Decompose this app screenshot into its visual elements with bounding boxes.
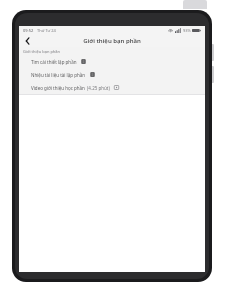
button[interactable]: Quay lại: [19, 34, 35, 47]
staticText: Thứ Tư 24: [37, 28, 56, 33]
button[interactable]: Phát video: [114, 85, 119, 90]
staticText: 09:52: [23, 28, 34, 33]
staticText: Nhiệu tài liệu tài lập phần: [31, 72, 86, 78]
staticText: Tìm cài thiết lập phần: [31, 59, 77, 65]
staticText: Giới thiệu bạn phần: [23, 49, 61, 54]
button[interactable]: Tìm cài thiết lập phần: [19, 55, 205, 68]
staticText: Giới thiệu bạn phần: [83, 37, 141, 45]
button[interactable]: Tài liệu: [81, 59, 86, 64]
staticText: (4.25 phút): [87, 85, 110, 91]
button[interactable]: Tài liệu: [90, 72, 95, 77]
button[interactable]: Video giới thiệu học phần: [19, 81, 205, 94]
button[interactable]: Nhiệu tài liệu tài lập phần: [19, 68, 205, 81]
staticText: Video giới thiệu học phần: [31, 85, 85, 91]
staticText: 93%: [183, 28, 191, 33]
